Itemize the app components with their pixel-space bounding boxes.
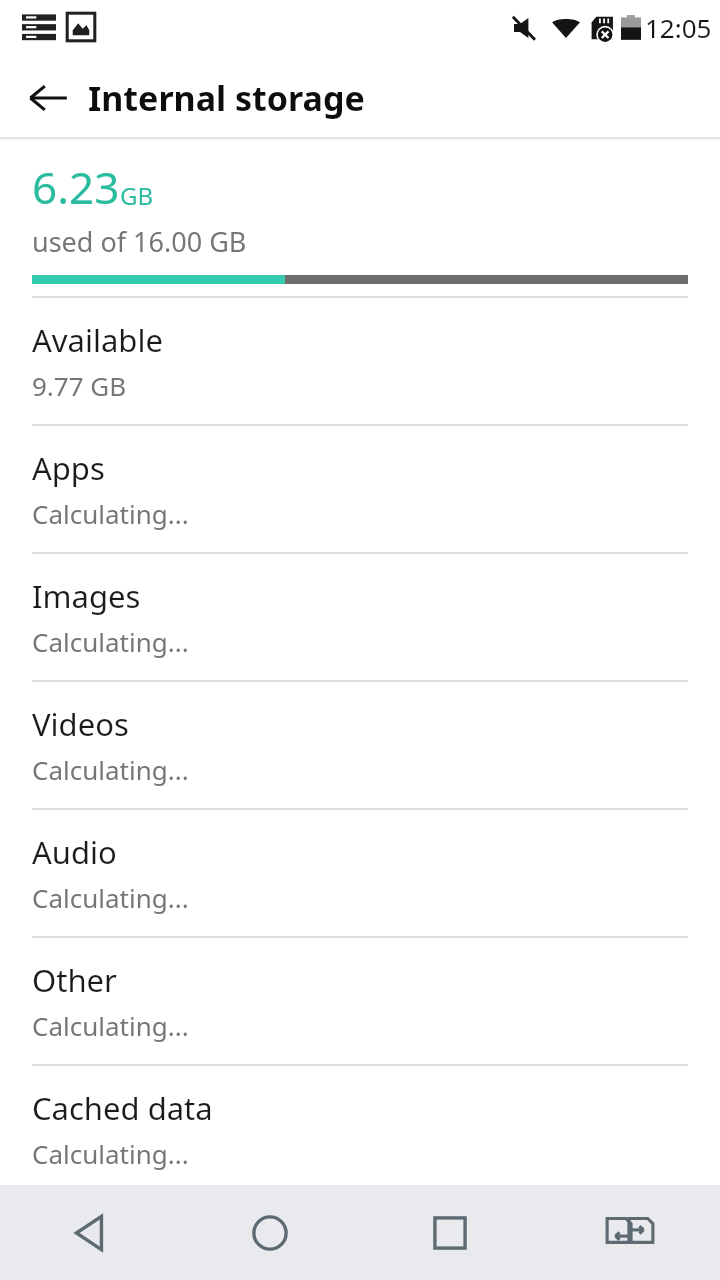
staticText: used of 16.00 GB (32, 223, 247, 260)
staticText: Videos (32, 703, 129, 745)
button[interactable]: Videos (0, 682, 720, 808)
staticText: 6.23 (32, 157, 120, 217)
button[interactable]: Home (180, 1185, 360, 1280)
staticText: Calculating... (32, 1008, 189, 1043)
button[interactable]: Available (0, 298, 720, 424)
staticText: Calculating... (32, 752, 189, 787)
button[interactable]: Back (0, 1185, 180, 1280)
staticText: Other (32, 959, 117, 1001)
button[interactable]: 6.23 (0, 141, 720, 296)
button[interactable]: Back (14, 64, 82, 132)
staticText: Calculating... (32, 880, 189, 915)
button[interactable]: Images (0, 554, 720, 680)
button[interactable]: Cached data (0, 1066, 720, 1192)
staticText: Internal storage (88, 75, 365, 121)
staticText: Apps (32, 447, 105, 489)
staticText: 12:05 (645, 10, 712, 45)
staticText: 9.77 GB (32, 368, 127, 403)
button[interactable]: Recents (360, 1185, 540, 1280)
staticText: Calculating... (32, 1136, 189, 1171)
staticText: Available (32, 319, 163, 361)
button[interactable]: Other (0, 938, 720, 1064)
button[interactable]: Audio (0, 810, 720, 936)
staticText: GB (120, 179, 154, 212)
staticText: Calculating... (32, 624, 189, 659)
staticText: Images (32, 575, 141, 617)
staticText: Audio (32, 831, 117, 873)
staticText: Calculating... (32, 496, 189, 531)
button[interactable]: Apps (0, 426, 720, 552)
button[interactable]: Split screen (540, 1185, 720, 1280)
staticText: Cached data (32, 1087, 213, 1129)
